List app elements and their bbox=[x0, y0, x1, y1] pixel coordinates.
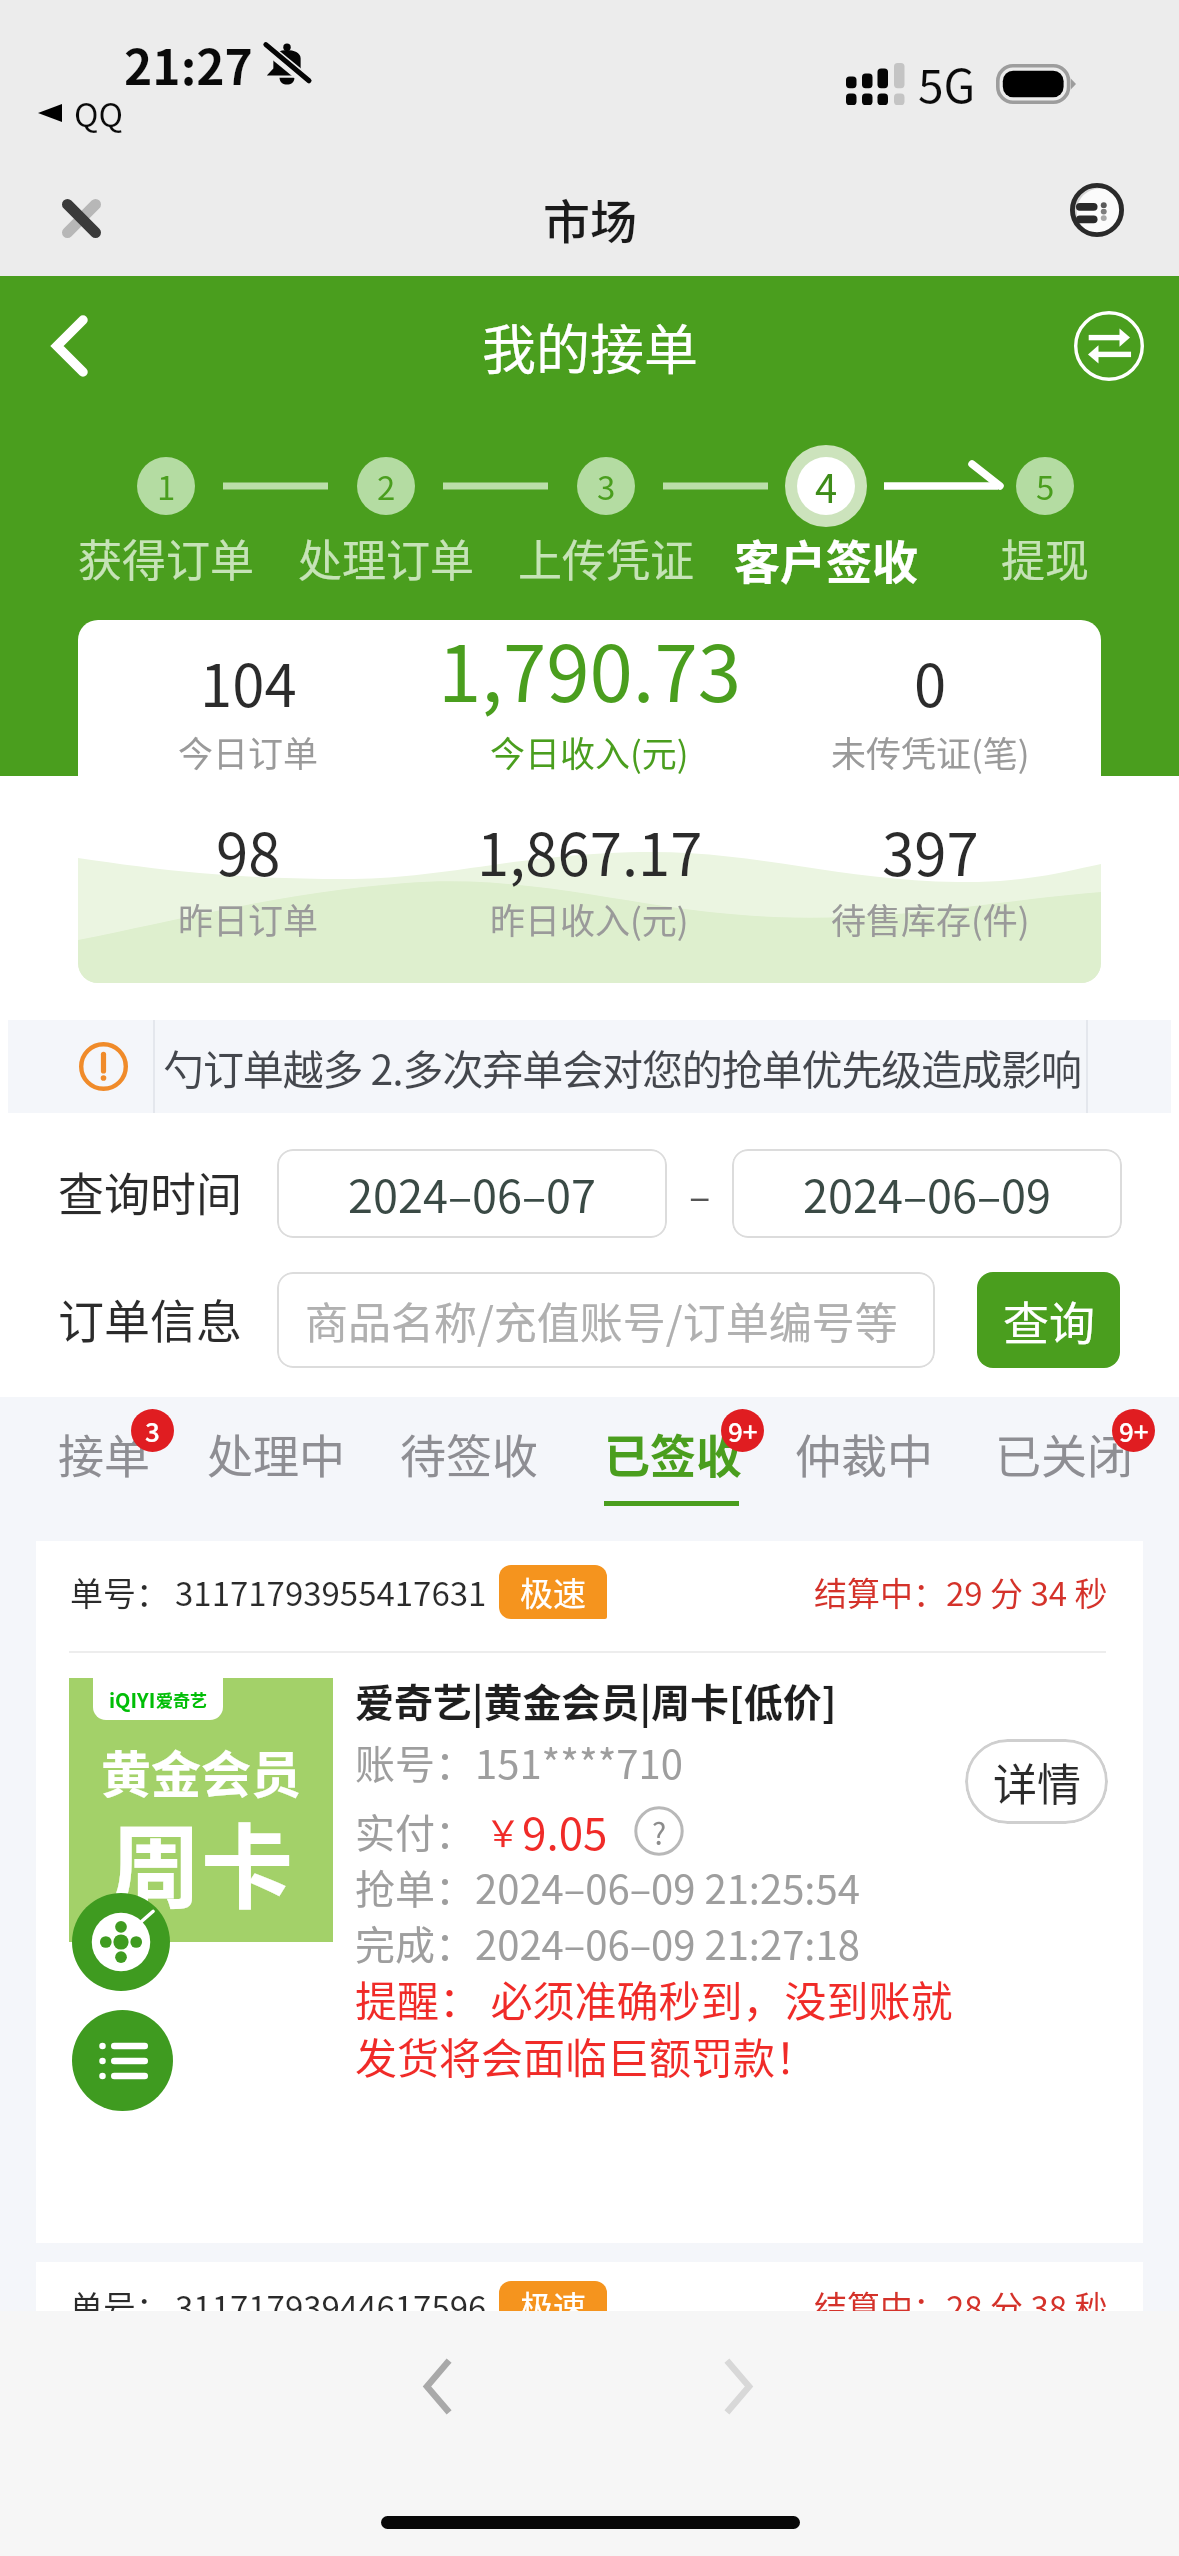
staticText: 处理中 bbox=[207, 1420, 345, 1487]
staticText: 104 bbox=[200, 640, 297, 724]
staticText: 单号： bbox=[70, 1568, 169, 1616]
button[interactable]: More bbox=[1052, 173, 1142, 263]
staticText: 详情 bbox=[993, 1750, 1081, 1814]
staticText: 发货将会面临巨额罚款！ bbox=[355, 2025, 818, 2086]
staticText: 2024–06–09 bbox=[803, 1161, 1052, 1226]
staticText: 昨日收入(元) bbox=[490, 893, 689, 944]
staticText: 提现 bbox=[1001, 526, 1089, 590]
staticText: 已签收 bbox=[604, 1420, 742, 1487]
staticText: ? bbox=[652, 1810, 667, 1853]
button[interactable]: Order item list bbox=[72, 2010, 173, 2111]
staticText: 接单 bbox=[58, 1420, 150, 1487]
staticText: 勺订单越多 2.多次弃单会对您的抢单优先级造成影响 bbox=[163, 1037, 1081, 1096]
staticText: 31171793955417631 bbox=[175, 1568, 487, 1616]
staticText: 今日收入(元) bbox=[490, 726, 689, 777]
staticText: 查询时间 bbox=[58, 1158, 242, 1225]
staticText: 获得订单 bbox=[78, 526, 254, 590]
staticText: 21:27 bbox=[124, 29, 253, 99]
staticText: 极速 bbox=[520, 2282, 586, 2330]
button[interactable]: Close bbox=[36, 173, 126, 263]
staticText: 1 bbox=[157, 462, 176, 510]
button[interactable]: 接单 bbox=[44, 1397, 160, 1541]
staticText: 2024–06–09 21:25:54 bbox=[475, 1858, 860, 1916]
staticText: 2024–06–09 21:27:18 bbox=[475, 1914, 860, 1972]
staticText: 查询 bbox=[1003, 1287, 1095, 1354]
button[interactable]: 已签收 bbox=[590, 1397, 750, 1541]
staticText: 2024–06–07 bbox=[348, 1161, 597, 1226]
button[interactable]: 处理中 bbox=[193, 1397, 353, 1541]
staticText: 未传凭证(笔) bbox=[831, 726, 1030, 777]
staticText: 3 bbox=[597, 462, 616, 510]
staticText: 爱奇艺 bbox=[156, 1687, 207, 1712]
staticText: 账号： bbox=[355, 1733, 475, 1791]
staticText: 0 bbox=[914, 640, 947, 724]
staticText: 1,867.17 bbox=[477, 809, 703, 893]
button[interactable]: 详情 bbox=[965, 1739, 1108, 1824]
staticText: 397 bbox=[882, 809, 979, 893]
staticText: 9.05 bbox=[522, 1799, 608, 1863]
staticText: 待售库存(件) bbox=[831, 893, 1030, 944]
staticText: 订单信息 bbox=[58, 1285, 242, 1352]
staticText: 昨日订单 bbox=[178, 893, 319, 944]
staticText: 结算中：29 分 34 秒 bbox=[814, 1568, 1108, 1616]
staticText: 5 bbox=[1036, 462, 1055, 510]
staticText: ￥ bbox=[485, 1805, 522, 1857]
staticText: 待签收 bbox=[400, 1420, 538, 1487]
staticText: 抢单： bbox=[355, 1858, 475, 1916]
staticText: 已关闭 bbox=[995, 1420, 1133, 1487]
staticText: 结算中：28 分 38 秒 bbox=[814, 2282, 1108, 2330]
staticText: 1,790.73 bbox=[438, 620, 742, 725]
staticText: 今日订单 bbox=[178, 726, 319, 777]
button[interactable]: 2024–06–09 bbox=[732, 1149, 1122, 1238]
staticText: 单号： bbox=[70, 2282, 169, 2330]
staticText: – bbox=[689, 1165, 711, 1223]
button[interactable]: 仲裁中 bbox=[781, 1397, 941, 1541]
staticText: 极速 bbox=[520, 1568, 586, 1616]
staticText: iQIYI bbox=[109, 1685, 156, 1714]
staticText: QQ bbox=[74, 89, 123, 137]
button[interactable]: Forward bbox=[674, 2321, 804, 2451]
staticText: 我的接单 bbox=[482, 307, 698, 385]
button[interactable]: Switch bbox=[1064, 301, 1154, 391]
button[interactable]: 待签收 bbox=[386, 1397, 546, 1541]
staticText: 31171793944617596 bbox=[175, 2282, 487, 2330]
button[interactable]: 2024–06–07 bbox=[277, 1149, 667, 1238]
staticText: 3 bbox=[145, 1412, 160, 1450]
staticText: 9+ bbox=[1119, 1412, 1149, 1450]
staticText: 5G bbox=[918, 50, 976, 117]
button[interactable]: Back bbox=[372, 2321, 502, 2451]
staticText: 周卡 bbox=[109, 1794, 294, 1927]
staticText: 4 bbox=[815, 457, 838, 515]
staticText: 客户签收 bbox=[734, 526, 918, 593]
staticText: 提醒： 必须准确秒到，没到账就 bbox=[355, 1968, 953, 2029]
staticText: 上传凭证 bbox=[518, 526, 694, 590]
staticText: 2 bbox=[377, 462, 396, 510]
staticText: 爱奇艺|黄金会员|周卡[低价] bbox=[355, 1672, 837, 1728]
button[interactable]: 商品名称/充值账号/订单编号等 bbox=[277, 1272, 935, 1368]
staticText: 完成： bbox=[355, 1914, 475, 1972]
button[interactable]: 查询 bbox=[977, 1272, 1120, 1368]
button[interactable]: 已关闭 bbox=[981, 1397, 1141, 1541]
button[interactable]: Back bbox=[25, 301, 115, 391]
staticText: 仲裁中 bbox=[795, 1420, 933, 1487]
staticText: 151****710 bbox=[475, 1733, 683, 1791]
staticText: 处理订单 bbox=[298, 526, 474, 590]
staticText: 9+ bbox=[728, 1412, 758, 1450]
staticText: 98 bbox=[216, 809, 281, 893]
staticText: 实付： bbox=[355, 1802, 475, 1860]
staticText: 商品名称/充值账号/订单编号等 bbox=[305, 1289, 898, 1351]
staticText: 黄金会员 bbox=[101, 1735, 301, 1807]
staticText: 市场 bbox=[543, 184, 637, 252]
